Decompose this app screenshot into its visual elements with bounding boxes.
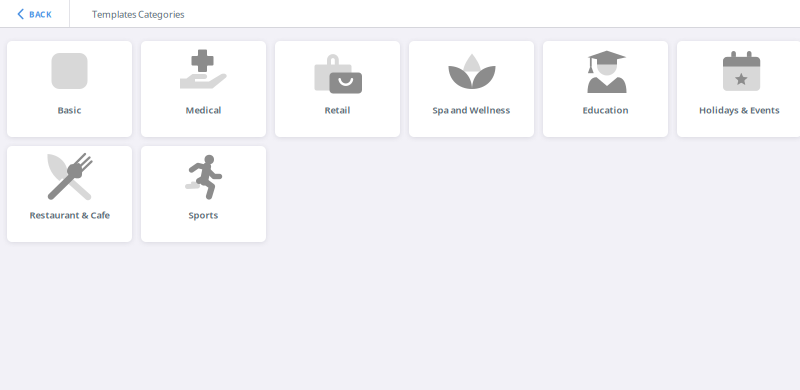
button[interactable]: Spa and Wellness	[409, 41, 534, 137]
button[interactable]: Medical	[141, 41, 266, 137]
staticText: B AC K	[29, 9, 51, 20]
staticText: Spa and Wellness	[432, 104, 510, 116]
button[interactable]: Back	[0, 0, 69, 27]
staticText: Basic	[57, 104, 81, 116]
staticText: Restaurant & Cafe	[29, 209, 109, 221]
staticText: Retail	[324, 104, 350, 116]
button[interactable]: Education	[543, 41, 668, 137]
button[interactable]: Holidays & Events	[677, 41, 800, 137]
button[interactable]: Retail	[275, 41, 400, 137]
staticText: Holidays & Events	[699, 104, 780, 116]
staticText: Medical	[185, 104, 221, 116]
staticText: Templates Categories	[92, 8, 184, 20]
button[interactable]: Sports	[141, 146, 266, 242]
staticText: Education	[582, 104, 628, 116]
staticText: Sports	[188, 209, 218, 221]
button[interactable]: Restaurant & Cafe	[7, 146, 132, 242]
button[interactable]: Basic	[7, 41, 132, 137]
